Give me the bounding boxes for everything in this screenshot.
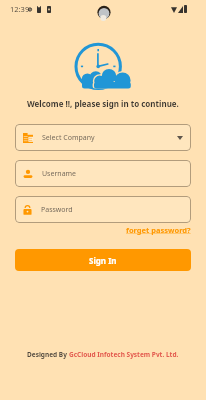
button[interactable]: forget password? xyxy=(126,225,191,235)
button[interactable]: Password xyxy=(15,196,191,223)
staticText: 12:39 xyxy=(10,4,30,14)
staticText: Welcome !!, please sign in to continue. xyxy=(27,98,179,109)
staticText: forget password? xyxy=(126,225,191,235)
button[interactable]: Username xyxy=(15,160,191,187)
staticText: Username xyxy=(42,169,77,179)
staticText: Designed By xyxy=(27,350,69,359)
staticText: Sign In xyxy=(89,255,117,266)
staticText: Password xyxy=(41,205,73,215)
button[interactable]: Sign In xyxy=(15,249,191,271)
staticText: Select Company xyxy=(42,133,95,143)
staticText: GcCloud Infotech System Pvt. Ltd. xyxy=(69,350,179,359)
button[interactable]: Select Company xyxy=(15,124,191,151)
